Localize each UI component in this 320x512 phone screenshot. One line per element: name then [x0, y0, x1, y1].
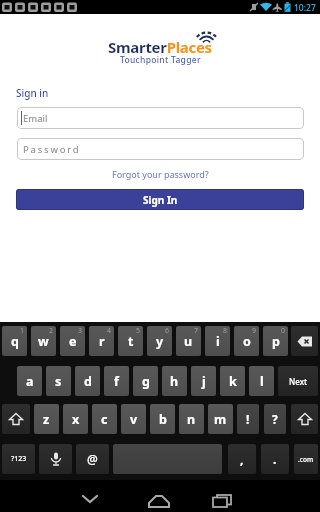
staticText: t: [128, 333, 134, 350]
staticText: c: [101, 411, 108, 428]
staticText: 1: [20, 326, 25, 336]
button[interactable]: [208, 486, 236, 512]
staticText: w: [38, 333, 49, 350]
staticText: i: [216, 333, 220, 350]
button[interactable]: t: [118, 326, 143, 356]
staticText: o: [243, 333, 251, 350]
button[interactable]: ?: [264, 404, 286, 434]
staticText: u: [184, 333, 193, 350]
staticText: x: [72, 411, 80, 428]
staticText: b: [159, 411, 167, 428]
staticText: Forgot your password?: [112, 168, 209, 180]
button[interactable]: z: [34, 404, 59, 434]
button[interactable]: j: [191, 366, 216, 396]
button[interactable]: [113, 444, 222, 474]
button[interactable]: q: [2, 326, 27, 356]
button[interactable]: w: [31, 326, 56, 356]
staticText: d: [84, 373, 92, 390]
staticText: n: [187, 411, 196, 428]
button[interactable]: .com: [294, 444, 318, 474]
staticText: 10:27: [294, 2, 316, 14]
button[interactable]: Email: [17, 107, 304, 129]
staticText: y: [156, 333, 164, 350]
staticText: m: [214, 411, 227, 428]
staticText: 6: [165, 326, 170, 336]
button[interactable]: Sign In: [16, 189, 304, 210]
staticText: z: [43, 411, 50, 428]
button[interactable]: .: [261, 444, 289, 474]
staticText: r: [99, 333, 105, 350]
staticText: j: [202, 373, 206, 390]
staticText: 2: [49, 326, 54, 336]
button[interactable]: g: [133, 366, 158, 396]
staticText: .: [273, 451, 277, 467]
staticText: p: [272, 333, 280, 350]
staticText: e: [69, 333, 77, 350]
button[interactable]: Next: [278, 366, 318, 396]
button[interactable]: l: [249, 366, 274, 396]
button[interactable]: [291, 326, 318, 356]
button[interactable]: f: [104, 366, 129, 396]
button[interactable]: m: [208, 404, 233, 434]
staticText: g: [142, 373, 150, 390]
staticText: .com: [298, 455, 314, 464]
button[interactable]: [39, 444, 72, 474]
staticText: ,: [240, 451, 244, 467]
button[interactable]: Password: [17, 138, 304, 160]
staticText: Email: [23, 112, 48, 125]
button[interactable]: [2, 404, 30, 434]
button[interactable]: [144, 486, 174, 512]
button[interactable]: [76, 486, 104, 512]
staticText: !: [246, 411, 250, 427]
button[interactable]: s: [46, 366, 71, 396]
staticText: Password: [23, 143, 81, 156]
button[interactable]: !: [237, 404, 259, 434]
staticText: 4: [107, 326, 112, 336]
staticText: h: [170, 373, 179, 390]
button[interactable]: u: [176, 326, 201, 356]
staticText: 7: [194, 326, 199, 336]
staticText: q: [11, 333, 19, 350]
button[interactable]: o: [234, 326, 259, 356]
button[interactable]: p: [263, 326, 288, 356]
button[interactable]: r: [89, 326, 114, 356]
button[interactable]: a: [17, 366, 42, 396]
staticText: ?: [272, 411, 278, 427]
staticText: Next: [289, 376, 308, 387]
button[interactable]: e: [60, 326, 85, 356]
staticText: 8: [223, 326, 228, 336]
staticText: 0: [281, 326, 286, 336]
staticText: ?123: [11, 454, 27, 464]
button[interactable]: [291, 404, 318, 434]
staticText: s: [55, 373, 62, 390]
staticText: Touchpoint Tagger: [120, 54, 201, 66]
button[interactable]: ,: [228, 444, 256, 474]
button[interactable]: k: [220, 366, 245, 396]
button[interactable]: v: [121, 404, 146, 434]
button[interactable]: d: [75, 366, 100, 396]
staticText: f: [114, 373, 119, 390]
staticText: k: [229, 373, 237, 390]
staticText: 3: [78, 326, 83, 336]
button[interactable]: Forgot your password?: [0, 168, 320, 180]
staticText: Sign In: [143, 193, 178, 207]
button[interactable]: n: [179, 404, 204, 434]
button[interactable]: i: [205, 326, 230, 356]
button[interactable]: h: [162, 366, 187, 396]
button[interactable]: ?123: [2, 444, 35, 474]
staticText: Sign in: [16, 86, 49, 100]
staticText: @: [87, 451, 98, 467]
button[interactable]: y: [147, 326, 172, 356]
staticText: SmarterPlaces: [108, 37, 212, 57]
staticText: a: [26, 373, 34, 390]
button[interactable]: c: [92, 404, 117, 434]
staticText: l: [260, 373, 264, 390]
staticText: v: [130, 411, 138, 428]
button[interactable]: b: [150, 404, 175, 434]
button[interactable]: @: [76, 444, 109, 474]
button[interactable]: x: [63, 404, 88, 434]
staticText: 5: [136, 326, 141, 336]
staticText: 9: [252, 326, 257, 336]
